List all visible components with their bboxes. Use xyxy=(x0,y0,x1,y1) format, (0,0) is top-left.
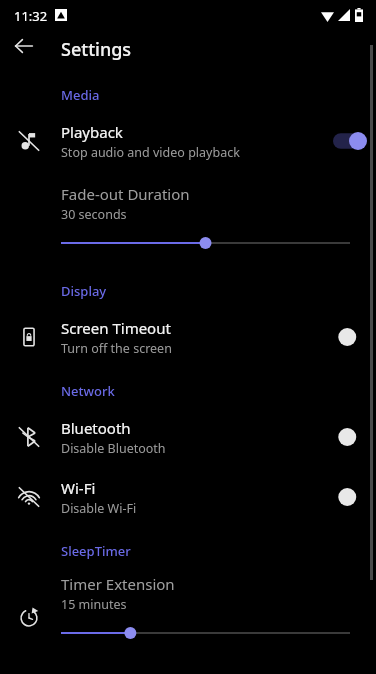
staticText: Settings xyxy=(61,37,132,62)
staticText: 11:32 xyxy=(14,7,48,25)
staticText: Stop audio and video playback xyxy=(61,144,240,161)
button[interactable]: Timer Extension xyxy=(0,574,376,646)
button[interactable]: Back xyxy=(8,30,40,62)
staticText: 15 minutes xyxy=(61,596,127,613)
staticText: Playback xyxy=(61,122,123,142)
button[interactable]: Fade-out Duration xyxy=(0,184,376,256)
staticText: SleepTimer xyxy=(61,542,131,560)
staticText: Fade-out Duration xyxy=(61,184,190,204)
staticText: Disable Bluetooth xyxy=(61,440,166,457)
staticText: Display xyxy=(61,282,107,300)
staticText: 30 seconds xyxy=(61,206,127,223)
staticText: Disable Wi-Fi xyxy=(61,500,137,517)
staticText: Turn off the screen xyxy=(61,340,172,357)
staticText: Wi-Fi xyxy=(61,478,96,498)
staticText: Screen Timeout xyxy=(61,318,171,338)
staticText: Network xyxy=(61,382,115,400)
staticText: Media xyxy=(61,86,100,104)
button[interactable]: Playback xyxy=(0,118,376,164)
staticText: Bluetooth xyxy=(61,418,131,438)
button[interactable]: Bluetooth xyxy=(0,414,376,460)
button[interactable]: Wi-Fi xyxy=(0,474,376,520)
staticText: Timer Extension xyxy=(61,574,175,594)
button[interactable]: Screen Timeout xyxy=(0,314,376,360)
